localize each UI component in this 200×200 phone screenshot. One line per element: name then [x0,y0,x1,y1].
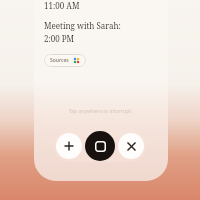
staticText: Sources [50,57,69,64]
button[interactable]: Add [56,133,82,159]
button[interactable]: Close [118,133,144,159]
staticText: Meeting with Sarah: [44,20,121,31]
staticText: 11:00 AM [44,0,80,11]
button[interactable]: Sources [44,54,86,67]
staticText: Tap anywhere to interrupt [0,108,200,115]
staticText: 2:00 PM [44,33,75,44]
button[interactable]: Stop [85,131,115,161]
